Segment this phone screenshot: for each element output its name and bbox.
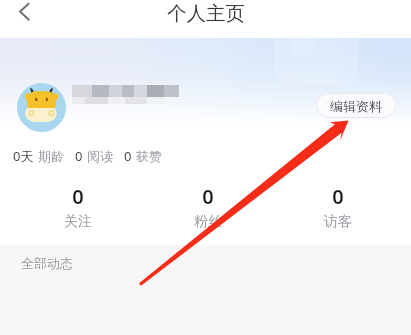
staticText: 个人主页 xyxy=(167,1,245,26)
staticText: 编辑资料 xyxy=(330,98,382,114)
button[interactable]: 0 xyxy=(13,183,143,231)
button[interactable]: 0 xyxy=(143,183,273,231)
staticText: 0天 xyxy=(13,147,34,165)
staticText: 0 xyxy=(332,183,344,210)
staticText: 期龄 xyxy=(38,148,64,164)
staticText: 粉丝 xyxy=(194,213,222,231)
button[interactable]: 全部动态 xyxy=(21,255,73,271)
staticText: 0 xyxy=(202,183,214,210)
button[interactable]: 编辑资料 xyxy=(316,93,396,118)
staticText: 关注 xyxy=(64,213,92,231)
staticText: 阅读 xyxy=(87,148,113,164)
staticText: 0 xyxy=(72,183,84,210)
staticText: 0 xyxy=(124,147,132,165)
staticText: 0 xyxy=(75,147,83,165)
button[interactable]: Profile avatar xyxy=(17,83,66,132)
button[interactable]: 0 xyxy=(273,183,403,231)
staticText: 访客 xyxy=(324,213,352,231)
staticText: 获赞 xyxy=(136,148,162,164)
button[interactable]: Back xyxy=(8,0,40,26)
